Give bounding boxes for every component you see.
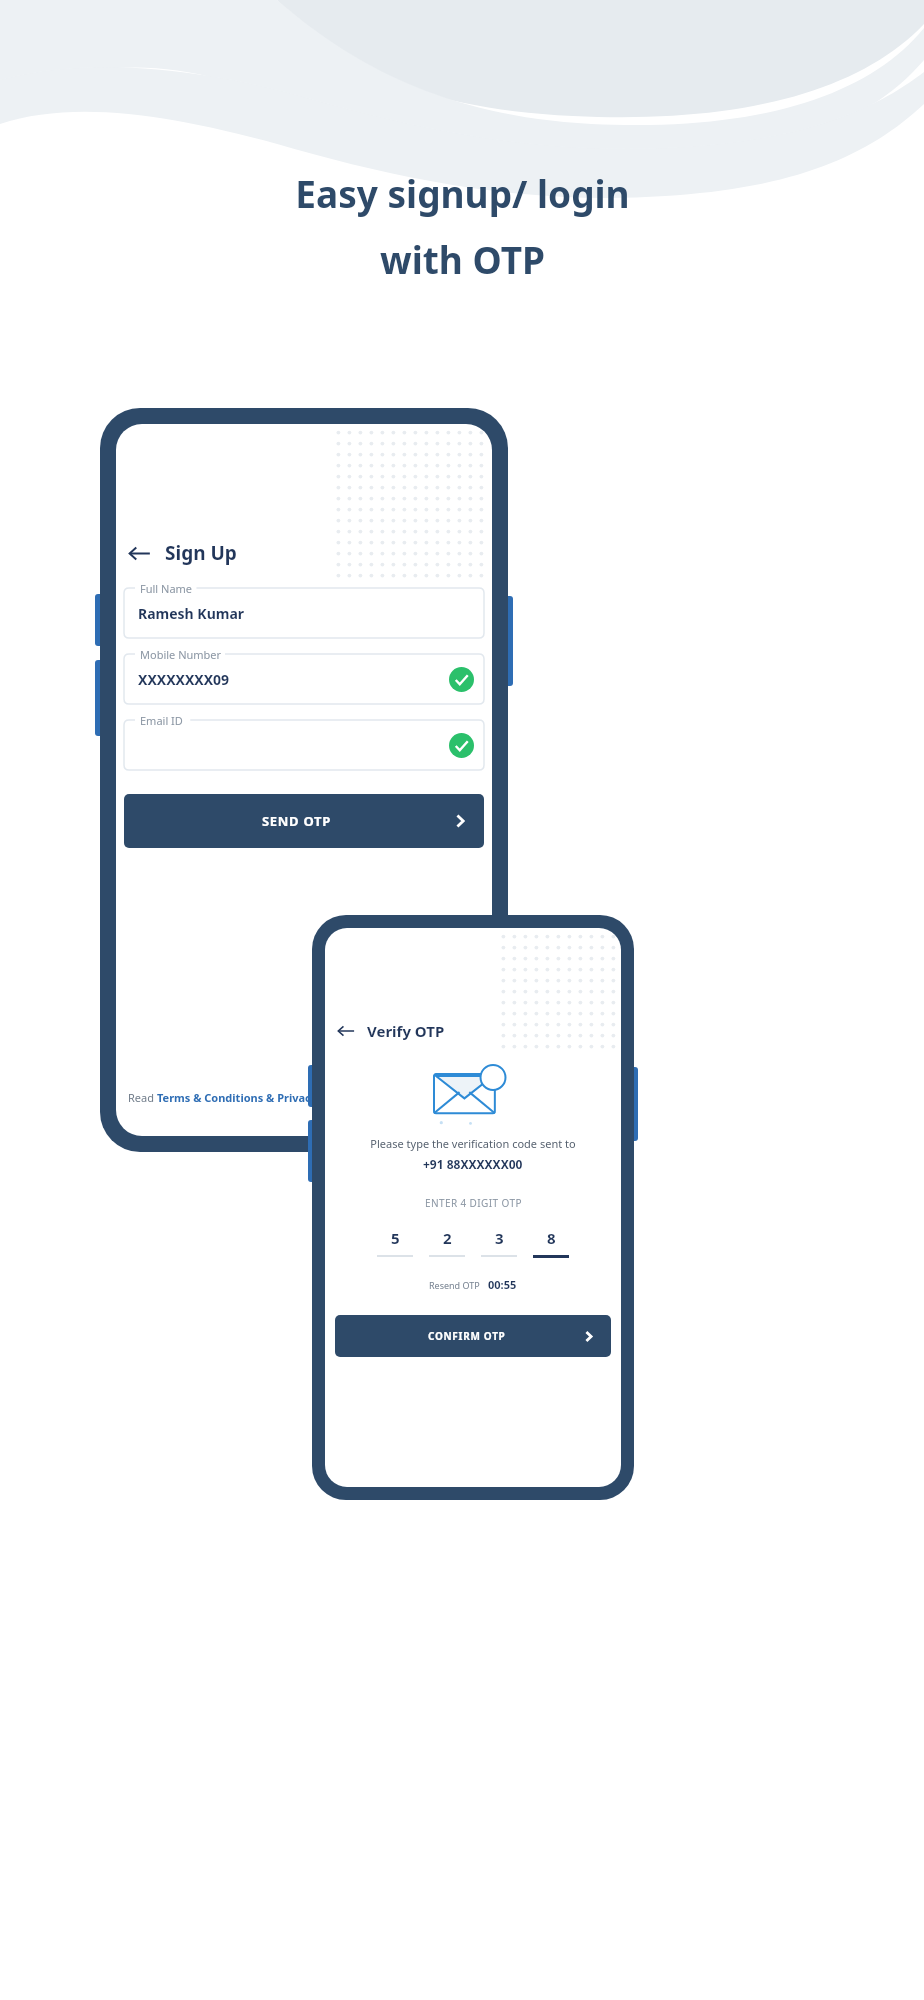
staticText: 2 — [443, 1228, 452, 1248]
staticText: Mobile Number — [140, 647, 222, 662]
staticText: Terms & Conditions & Privacy — [157, 1090, 318, 1105]
staticText: 00:55 — [488, 1277, 517, 1292]
button[interactable]: Full Name — [124, 588, 484, 638]
button[interactable]: Mobile Number — [124, 654, 484, 704]
staticText: Please type the verification code sent t… — [370, 1136, 576, 1151]
other: Back — [128, 542, 151, 565]
staticText: XXXXXXXX09 — [138, 670, 230, 689]
staticText: Easy signup/ login — [295, 168, 630, 218]
staticText: ENTER 4 DIGIT OTP — [425, 1196, 522, 1210]
button[interactable]: Read — [124, 1086, 322, 1109]
other: Back — [337, 1022, 355, 1040]
staticText: Verify OTP — [367, 1021, 445, 1041]
staticText: with OTP — [380, 234, 545, 284]
staticText: Resend OTP — [429, 1279, 480, 1291]
button[interactable]: 3 — [481, 1228, 517, 1257]
button[interactable]: Verified — [449, 667, 474, 692]
staticText: 8 — [547, 1228, 556, 1248]
button[interactable]: Back — [333, 1016, 513, 1046]
button[interactable]: 5 — [377, 1228, 413, 1257]
staticText: Sign Up — [165, 540, 237, 566]
button[interactable]: Back — [124, 534, 344, 572]
button[interactable]: 2 — [429, 1228, 465, 1257]
staticText: Ramesh Kumar — [138, 604, 245, 623]
staticText: Full Name — [140, 581, 193, 596]
button[interactable]: SEND OTP — [124, 794, 484, 848]
staticText: +91 88XXXXXX00 — [423, 1156, 523, 1172]
button[interactable]: Resend OTP — [426, 1274, 520, 1295]
button[interactable]: Verified — [449, 733, 474, 758]
staticText: 3 — [495, 1228, 504, 1248]
staticText: 5 — [391, 1228, 400, 1248]
button[interactable]: 8 — [533, 1228, 569, 1258]
button[interactable]: Email ID — [124, 720, 484, 770]
button[interactable]: CONFIRM OTP — [335, 1315, 611, 1357]
staticText: CONFIRM OTP — [428, 1329, 506, 1343]
staticText: Read — [128, 1090, 157, 1105]
staticText: Email ID — [140, 713, 183, 728]
staticText: SEND OTP — [262, 812, 331, 830]
